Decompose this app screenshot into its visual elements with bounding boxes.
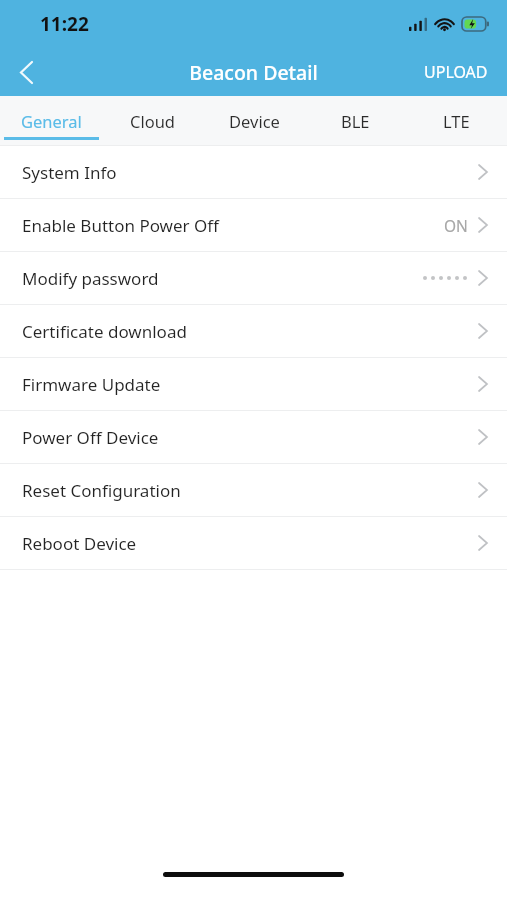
button[interactable]: General [0,96,102,145]
staticText: Certificate download [22,320,187,343]
staticText: 11:22 [40,11,89,37]
staticText: System Info [22,161,117,184]
button[interactable]: Reboot Device [0,517,507,570]
staticText: Device [229,110,280,132]
staticText: Enable Button Power Off [22,214,219,237]
button[interactable]: LTE [406,96,507,145]
staticText: Cloud [130,110,176,132]
button[interactable]: Reset Configuration [0,464,507,517]
staticText: Beacon Detail [189,59,318,86]
button[interactable]: Cloud [102,96,204,145]
button[interactable]: Certificate download [0,305,507,358]
button[interactable]: Firmware Update [0,358,507,411]
button[interactable]: Device [204,96,305,145]
staticText: Reset Configuration [22,479,181,502]
button[interactable]: Enable Button Power Off [0,199,507,252]
button[interactable]: Power Off Device [0,411,507,464]
staticText: Reboot Device [22,532,137,555]
button[interactable]: Back [0,48,52,96]
button[interactable]: UPLOAD [405,48,507,96]
button[interactable]: System Info [0,146,507,199]
staticText: LTE [443,110,470,132]
staticText: General [21,110,82,132]
staticText: BLE [341,110,370,132]
staticText: ON [444,215,468,236]
staticText: Firmware Update [22,373,161,396]
staticText: Modify password [22,267,159,290]
button[interactable]: Modify password [0,252,507,305]
button[interactable]: BLE [305,96,406,145]
staticText: Power Off Device [22,426,159,449]
staticText: UPLOAD [424,61,488,83]
